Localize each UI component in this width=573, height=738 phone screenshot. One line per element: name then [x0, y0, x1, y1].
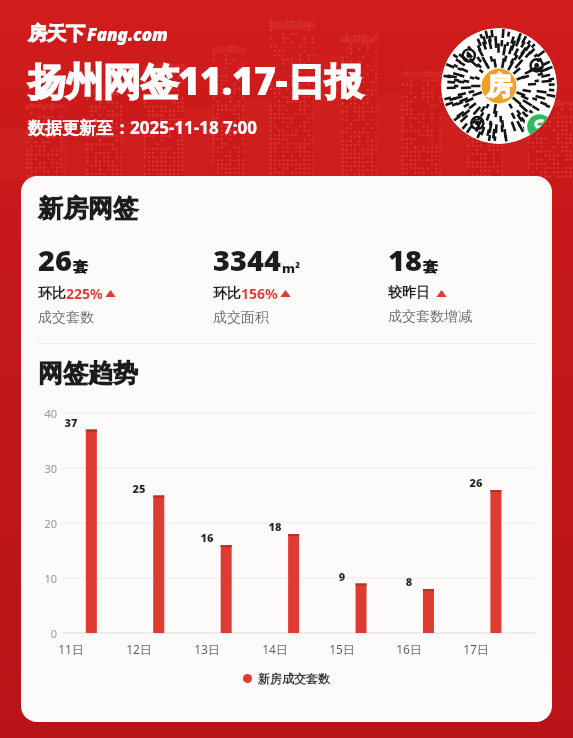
staticText: 37: [54, 415, 88, 430]
staticText: 14日: [256, 641, 294, 657]
staticText: 26: [38, 240, 72, 279]
staticText: 房天下: [28, 22, 85, 46]
staticText: 11日: [52, 641, 90, 657]
staticText: Fang.com: [87, 23, 168, 46]
button[interactable]: 新房成交套数: [21, 671, 552, 686]
staticText: 225%: [66, 284, 103, 303]
staticText: 新房成交套数: [258, 671, 330, 686]
staticText: 15日: [323, 641, 361, 657]
staticText: 0: [35, 626, 57, 641]
staticText: 20: [35, 516, 57, 531]
staticText: 40: [35, 406, 57, 421]
staticText: 数据更新至：2025-11-18 7:00: [28, 116, 258, 139]
staticText: 16: [190, 530, 224, 545]
staticText: 套: [73, 258, 88, 277]
staticText: 156%: [241, 284, 278, 303]
staticText: 30: [35, 461, 57, 476]
staticText: 较昨日: [388, 284, 430, 302]
staticText: 18: [258, 519, 292, 534]
staticText: 环比: [38, 285, 66, 303]
button[interactable]: 3344: [213, 240, 388, 327]
staticText: 9: [325, 569, 359, 584]
staticText: 扬州网签11.17-日报: [28, 54, 363, 106]
staticText: 环比: [213, 285, 241, 303]
staticText: 8: [392, 574, 426, 589]
staticText: 25: [122, 481, 156, 496]
button[interactable]: 扫描小程序二维码: [441, 28, 557, 144]
staticText: 13日: [188, 641, 226, 657]
staticText: 成交套数增减: [388, 308, 472, 326]
staticText: 新房网签: [38, 193, 138, 224]
button[interactable]: 26: [38, 240, 213, 327]
staticText: 26: [459, 475, 493, 490]
staticText: 房: [486, 70, 512, 103]
staticText: 成交面积: [213, 309, 269, 327]
staticText: 3344: [213, 240, 281, 279]
staticText: 12日: [120, 641, 158, 657]
staticText: 16日: [390, 641, 428, 657]
button[interactable]: 18: [388, 240, 548, 326]
staticText: 套: [423, 258, 438, 277]
staticText: 17日: [457, 641, 495, 657]
staticText: 网签趋势: [38, 358, 138, 389]
staticText: m²: [282, 259, 301, 277]
staticText: 18: [388, 240, 422, 279]
staticText: 成交套数: [38, 309, 94, 327]
staticText: 10: [35, 571, 57, 586]
